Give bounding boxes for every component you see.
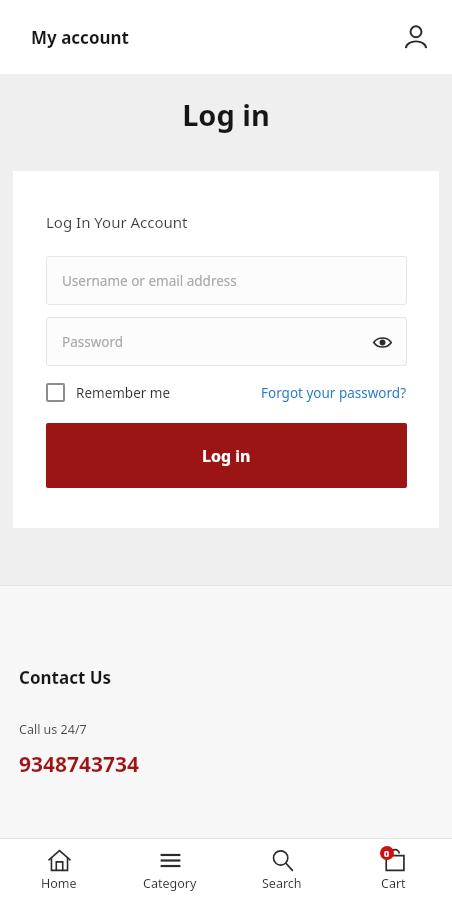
staticText: Home xyxy=(41,875,77,892)
staticText: Log in xyxy=(0,95,452,134)
staticText: Cart xyxy=(381,875,406,892)
staticText: Contact Us xyxy=(19,666,112,689)
button[interactable]: Username or email address xyxy=(46,256,407,305)
staticText: 9348743734 xyxy=(19,750,140,779)
button[interactable]: 0 xyxy=(341,839,445,900)
staticText: Forgot your password? xyxy=(261,384,407,402)
staticText: Category xyxy=(143,875,197,892)
staticText: Call us 24/7 xyxy=(19,721,87,738)
button[interactable]: Log in xyxy=(46,423,407,488)
staticText: Remember me xyxy=(76,384,171,402)
button[interactable]: Home xyxy=(7,839,111,900)
button[interactable]: Show password xyxy=(368,328,396,356)
staticText: 0 xyxy=(384,847,390,859)
button[interactable]: Search xyxy=(230,839,334,900)
staticText: Username or email address xyxy=(62,272,237,290)
staticText: Password xyxy=(62,333,124,351)
button[interactable]: Remember me xyxy=(46,383,171,402)
staticText: Log In Your Account xyxy=(46,212,188,232)
button[interactable]: Account xyxy=(394,15,438,59)
staticText: My account xyxy=(31,26,129,49)
button[interactable]: Password xyxy=(46,317,407,366)
staticText: Search xyxy=(262,875,302,892)
button[interactable]: Forgot your password? xyxy=(261,384,407,402)
staticText: Log in xyxy=(202,445,251,467)
button[interactable]: Category xyxy=(118,839,222,900)
